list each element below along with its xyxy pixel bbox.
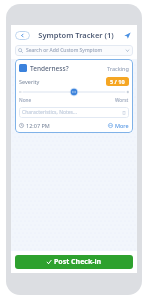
staticText: 5 / 10: [110, 78, 125, 85]
staticText: Post Check-in: [54, 257, 102, 267]
button[interactable]: Search or Add Custom Symptom: [15, 45, 133, 56]
staticText: None: [19, 97, 32, 104]
staticText: 12:07 PM: [26, 122, 50, 129]
staticText: Worst: [115, 97, 129, 104]
button[interactable]: More: [108, 122, 129, 129]
staticText: Tenderness?: [30, 64, 69, 73]
button[interactable]: Tracking toggle: [19, 64, 27, 72]
button[interactable]: Back: [15, 31, 30, 40]
staticText: Search or Add Custom Symptom: [26, 47, 103, 54]
button[interactable]: Post Check-in: [15, 255, 133, 269]
button[interactable]: Share: [122, 30, 133, 41]
staticText: More: [115, 122, 129, 129]
button[interactable]: Tracking toggle: [15, 59, 133, 133]
staticText: Symptom Tracker (1): [38, 30, 114, 40]
staticText: Tracking: [107, 65, 129, 72]
button[interactable]: Characteristics, Notes...: [19, 107, 129, 118]
staticText: Characteristics, Notes...: [22, 109, 77, 116]
button[interactable]: Severity slider: [19, 87, 129, 97]
staticText: Severity: [19, 78, 40, 85]
